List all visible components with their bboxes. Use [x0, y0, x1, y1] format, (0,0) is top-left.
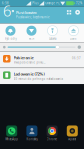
staticText: 6:38	[2, 1, 9, 5]
staticText: Kontakty	[26, 137, 37, 141]
staticText: Dane	[70, 37, 77, 40]
staticText: Pustkowiec	[16, 10, 37, 15]
staticText: Wi-Fi	[28, 37, 34, 40]
staticText: Orange PL	[45, 1, 59, 5]
staticText: Aparat	[68, 137, 76, 141]
staticText: 40 minut do pełnego naładowania	[13, 77, 62, 81]
button[interactable]: Chrome	[43, 125, 62, 141]
staticText: Plus	[32, 1, 38, 5]
button[interactable]: WhatsApp	[2, 125, 21, 141]
button[interactable]: Kontakty	[22, 125, 41, 141]
button[interactable]: Edit quick settings	[66, 9, 72, 15]
button[interactable]: Latarka	[42, 25, 63, 41]
button[interactable]: Wi-Fi	[21, 25, 42, 41]
button[interactable]: Settings	[74, 9, 81, 16]
staticText: Pobieranie	[13, 55, 33, 60]
staticText: 6	[3, 1, 11, 20]
staticText: Pustkowiec, bezchmurnie	[16, 15, 50, 19]
staticText: 06:37	[72, 56, 81, 60]
button[interactable]: Aparat	[63, 125, 82, 141]
button[interactable]: Ładowanie (72%)	[0, 68, 84, 84]
staticText: Latarka	[49, 37, 56, 40]
staticText: Chrome	[47, 137, 58, 141]
staticText: Trwa pobieranie pliku…	[13, 61, 45, 64]
staticText: WhatsApp	[5, 137, 18, 141]
staticText: 72%	[76, 1, 82, 5]
button[interactable]: Dane	[63, 25, 84, 41]
staticText: Tryb cichy	[4, 37, 16, 40]
staticText: Ładowanie (72%)	[13, 71, 44, 77]
button[interactable]: Tryb cichy	[0, 25, 21, 41]
button[interactable]: Pobieranie	[0, 52, 84, 68]
